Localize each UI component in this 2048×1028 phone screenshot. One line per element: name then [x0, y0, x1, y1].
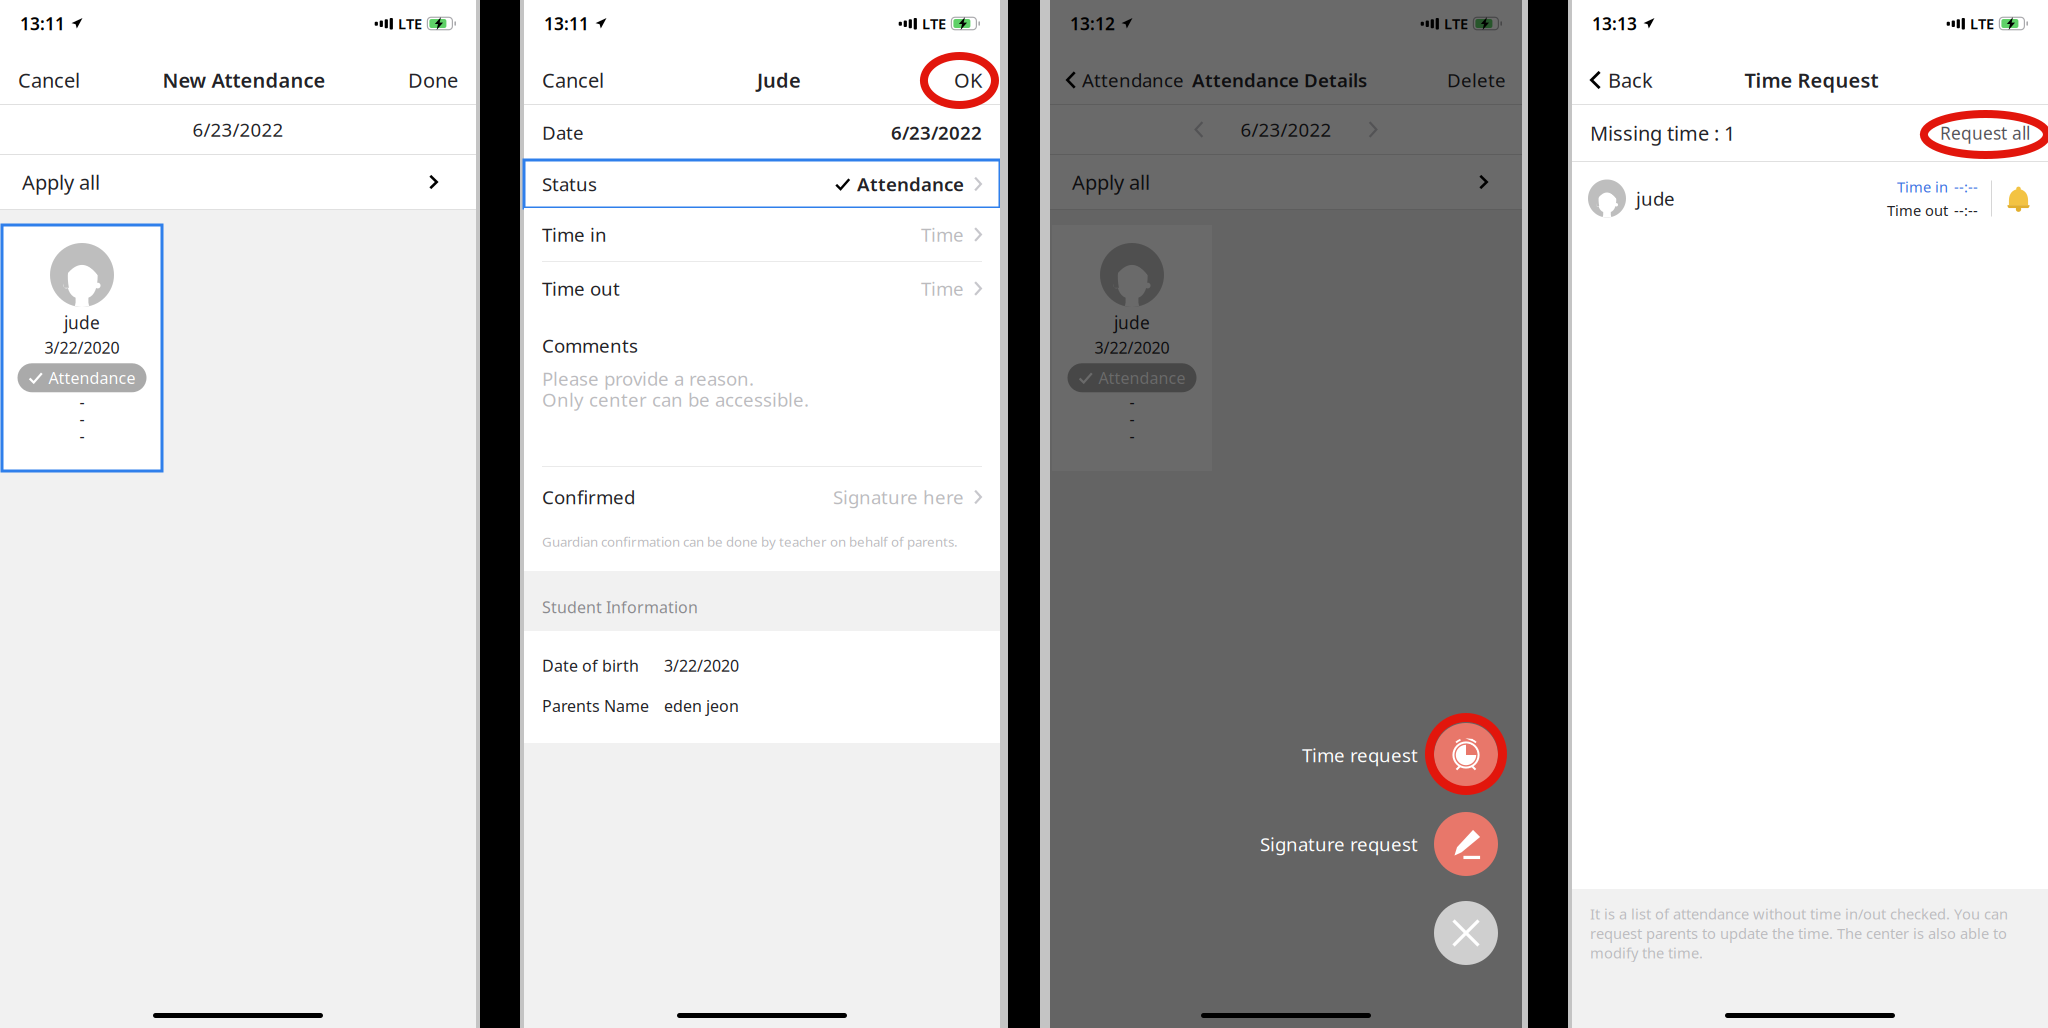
staticText: LTE — [1970, 14, 1994, 33]
staticText: 13:11 — [20, 12, 65, 35]
button[interactable]: Request time — [2005, 185, 2032, 212]
button[interactable]: Request all — [1940, 121, 2030, 144]
staticText: - — [1129, 391, 1134, 412]
staticText: Date of birth — [542, 655, 639, 676]
button[interactable]: Time in — [524, 208, 1000, 261]
staticText: --:-- — [1954, 177, 1978, 196]
staticText: Request all — [1940, 121, 2030, 144]
staticText: Back — [1608, 67, 1653, 93]
staticText: Date — [542, 120, 584, 145]
staticText: --:-- — [1954, 200, 1978, 220]
button[interactable]: Attendance — [1066, 68, 1184, 92]
button[interactable]: Next day — [1360, 121, 1385, 138]
button[interactable]: Close — [1434, 901, 1498, 965]
staticText: eden jeon — [664, 695, 739, 716]
staticText: Only center can be accessible. — [542, 387, 809, 412]
staticText: Attendance — [857, 172, 964, 196]
staticText: Attendance — [1098, 367, 1185, 388]
staticText: 13:13 — [1592, 12, 1637, 35]
button[interactable]: Cancel — [18, 67, 80, 93]
button[interactable]: Done — [408, 67, 458, 93]
staticText: 6/23/2022 — [1240, 117, 1331, 142]
staticText: LTE — [1444, 14, 1468, 33]
staticText: 6/23/2022 — [192, 117, 283, 142]
staticText: Apply all — [1072, 169, 1150, 195]
staticText: Status — [542, 172, 597, 196]
staticText: Attendance — [48, 367, 135, 388]
staticText: Time in — [542, 222, 607, 247]
staticText: Cancel — [542, 67, 604, 93]
staticText: Time out — [542, 276, 620, 301]
button[interactable]: Confirmed — [524, 467, 1000, 527]
staticText: - — [79, 408, 84, 429]
button[interactable]: Back — [1590, 67, 1653, 93]
button[interactable]: Cancel — [542, 67, 604, 93]
staticText: Done — [408, 67, 458, 93]
button[interactable]: jude — [2, 225, 162, 471]
staticText: New Attendance — [162, 67, 325, 93]
staticText: Comments — [542, 333, 638, 358]
button[interactable]: Apply all — [0, 155, 476, 209]
staticText: 3/22/2020 — [664, 655, 739, 676]
staticText: 3/22/2020 — [1094, 337, 1169, 358]
staticText: Please provide a reason. — [542, 366, 754, 391]
staticText: - — [1129, 408, 1134, 429]
staticText: Signature here — [833, 485, 964, 509]
button[interactable]: Status — [524, 160, 1000, 208]
staticText: Cancel — [18, 67, 80, 93]
button[interactable]: Signature request — [1050, 812, 1522, 876]
staticText: Confirmed — [542, 485, 635, 509]
staticText: LTE — [922, 14, 946, 33]
staticText: Time out — [1887, 200, 1948, 220]
button[interactable]: Time request — [1050, 723, 1522, 787]
button[interactable]: OK — [954, 67, 982, 93]
staticText: Jude — [757, 67, 801, 93]
staticText: Signature request — [1260, 832, 1418, 856]
staticText: Attendance Details — [1192, 68, 1367, 92]
staticText: Time — [921, 222, 964, 247]
staticText: Missing time : 1 — [1590, 120, 1735, 146]
button[interactable]: jude — [1052, 225, 1212, 471]
button[interactable]: Delete — [1447, 68, 1506, 92]
staticText: jude — [64, 311, 100, 334]
staticText: It is a list of attendance without time … — [1590, 904, 2008, 962]
staticText: Parents Name — [542, 695, 649, 716]
staticText: Student Information — [542, 596, 698, 618]
staticText: Apply all — [22, 169, 100, 195]
staticText: Time in — [1897, 177, 1948, 196]
staticText: - — [79, 391, 84, 412]
button[interactable]: Previous day — [1186, 121, 1211, 138]
staticText: jude — [1636, 186, 1675, 211]
staticText: Delete — [1447, 68, 1506, 92]
staticText: Time — [921, 276, 964, 301]
staticText: Guardian confirmation can be done by tea… — [542, 533, 958, 550]
staticText: 13:12 — [1070, 12, 1115, 35]
staticText: LTE — [398, 14, 422, 33]
staticText: Time Request — [1744, 67, 1878, 93]
staticText: - — [1129, 425, 1134, 446]
staticText: OK — [954, 67, 982, 93]
button[interactable]: Time out — [524, 262, 1000, 315]
staticText: Attendance — [1082, 68, 1184, 92]
staticText: - — [79, 425, 84, 446]
staticText: 3/22/2020 — [44, 337, 119, 358]
staticText: 6/23/2022 — [891, 120, 982, 145]
staticText: Time request — [1302, 743, 1418, 767]
staticText: jude — [1114, 311, 1150, 334]
staticText: 13:11 — [544, 12, 589, 35]
